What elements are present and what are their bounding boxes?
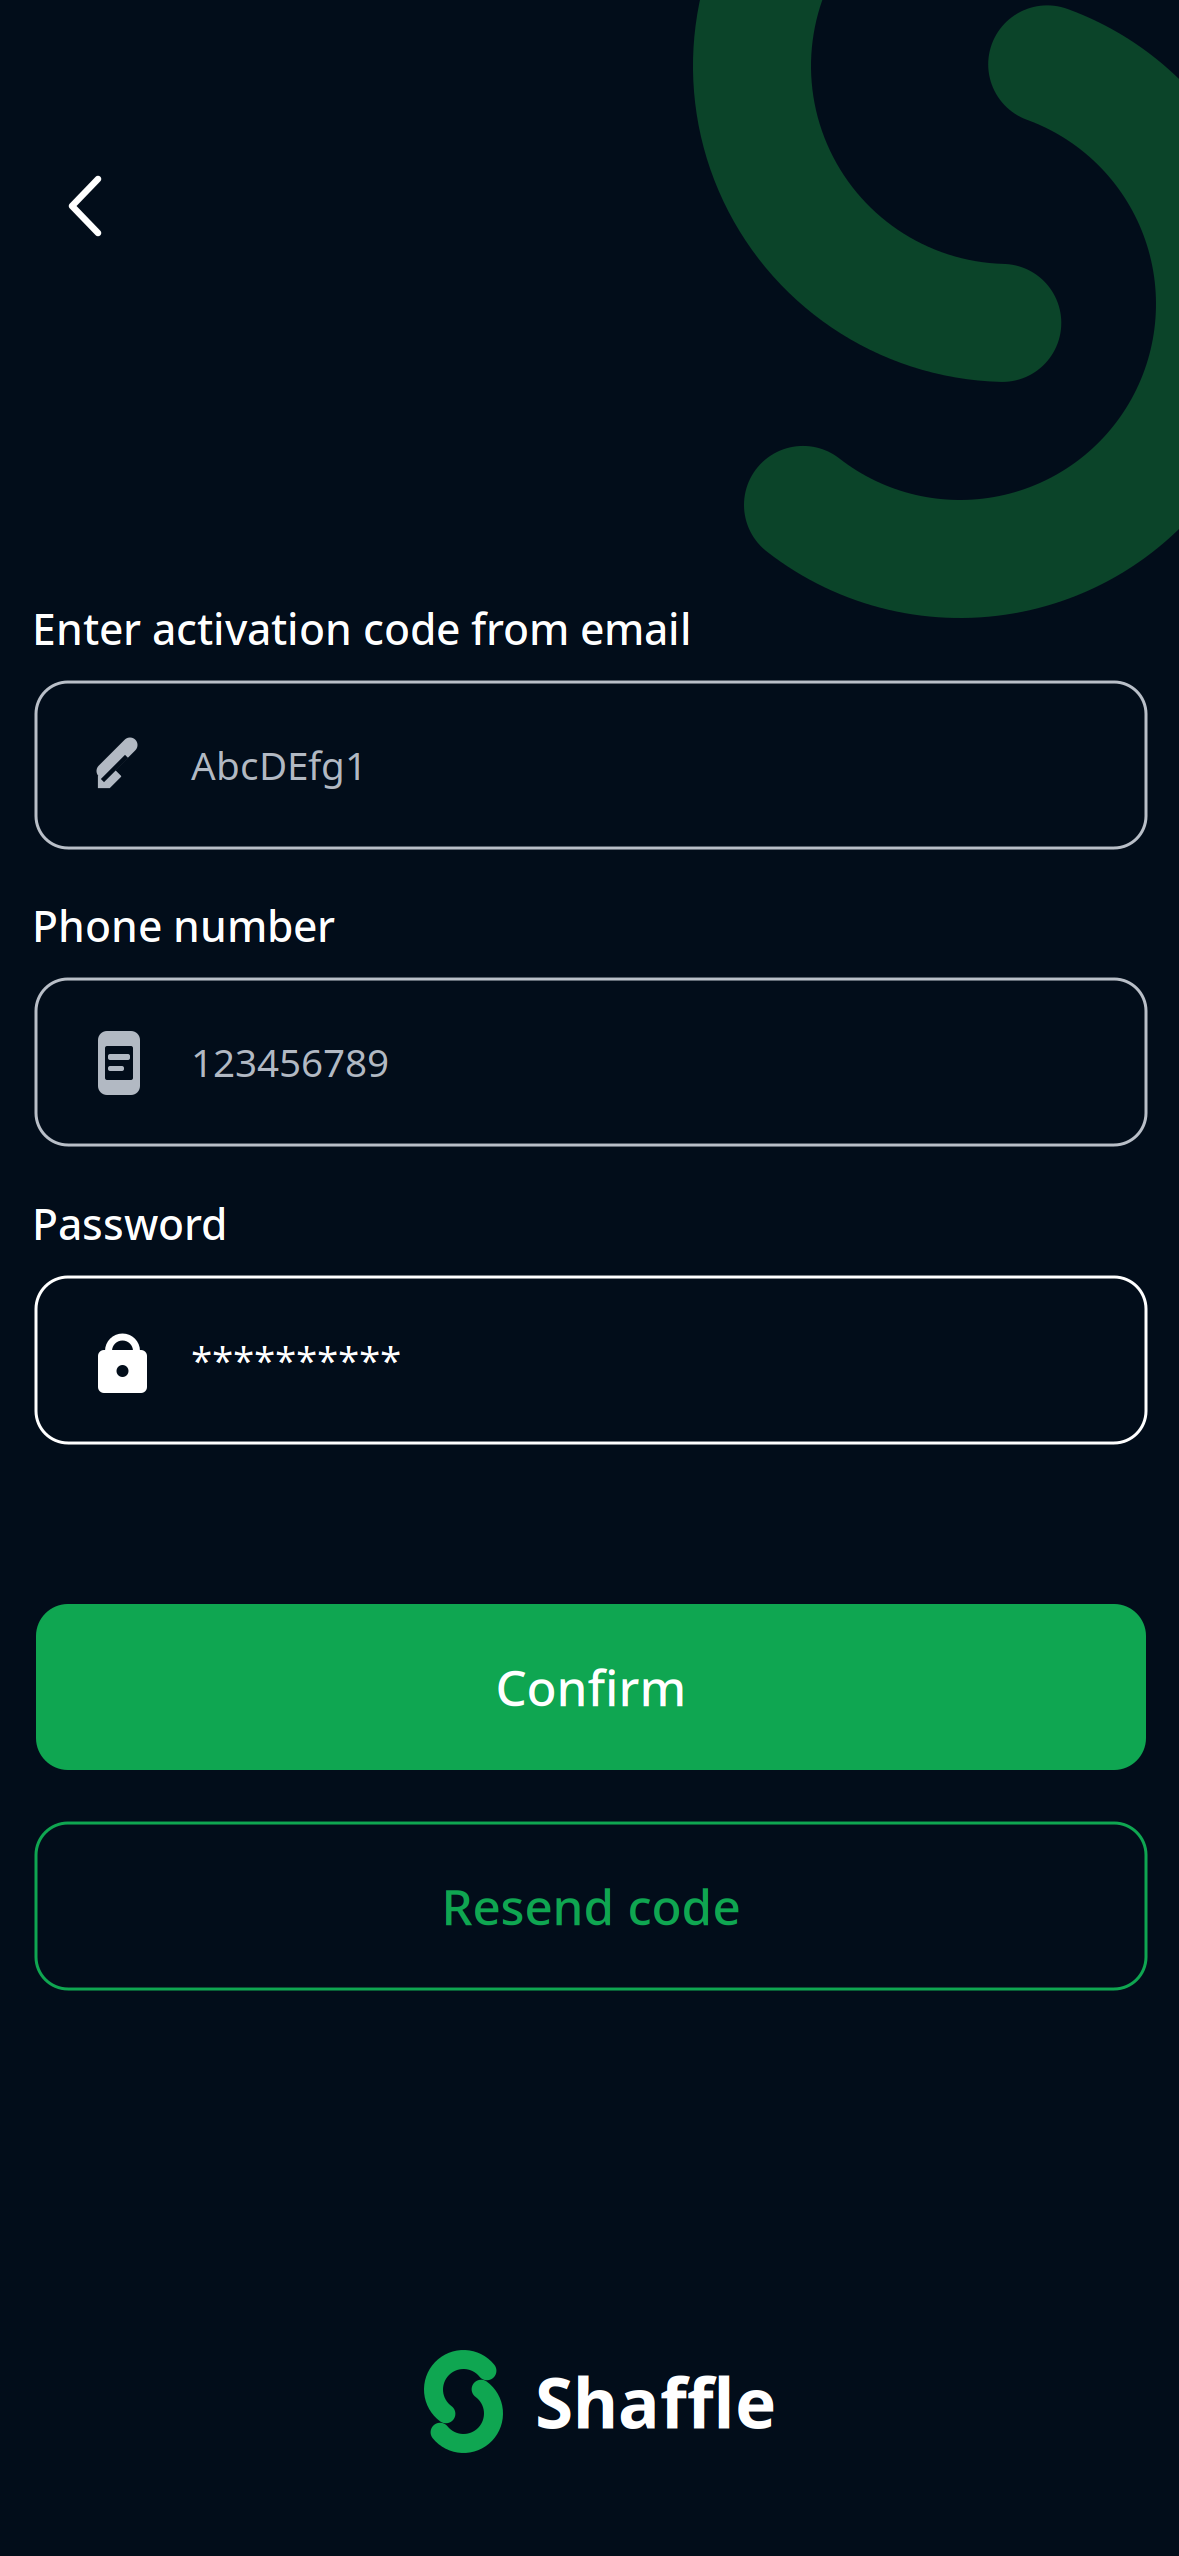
button[interactable]: Back — [52, 152, 162, 262]
staticText: Confirm — [495, 1654, 686, 1720]
staticText: Shaffle — [535, 2355, 776, 2448]
button[interactable]: Resend code — [36, 1823, 1146, 1989]
staticText: 123456789 — [191, 1036, 389, 1088]
staticText: AbcDEfg1 — [191, 739, 367, 791]
staticText: Enter activation code from email — [32, 600, 692, 657]
staticText: Resend code — [441, 1873, 740, 1939]
staticText: Phone number — [32, 897, 335, 954]
staticText: ********** — [191, 1334, 401, 1386]
staticText: Password — [32, 1195, 227, 1252]
button[interactable]: Confirm — [36, 1604, 1146, 1770]
